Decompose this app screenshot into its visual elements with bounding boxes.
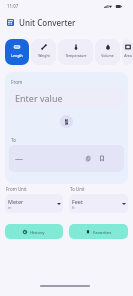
staticText: To Unit — [70, 186, 85, 192]
staticText: Area — [124, 53, 132, 58]
button[interactable]: Area — [122, 39, 133, 65]
button[interactable]: Bookmark — [100, 156, 104, 161]
staticText: Enter value — [15, 92, 63, 104]
staticText: Length — [11, 53, 23, 58]
button[interactable]: Favorites — [69, 224, 128, 239]
button[interactable]: Volume — [95, 39, 120, 65]
staticText: Volume — [101, 53, 114, 58]
button[interactable]: Temperature — [58, 39, 93, 65]
staticText: 11:07 — [7, 3, 19, 9]
button[interactable]: Swap units — [60, 115, 73, 128]
button[interactable]: History — [5, 224, 63, 239]
staticText: m — [8, 205, 12, 210]
button[interactable]: Enter value — [9, 88, 124, 108]
button[interactable]: Meter — [5, 194, 63, 213]
staticText: History — [30, 229, 45, 235]
staticText: Feet — [72, 198, 83, 205]
staticText: From — [11, 79, 23, 85]
staticText: From Unit — [6, 186, 27, 192]
staticText: Weight — [38, 53, 50, 58]
staticText: Unit Converter — [19, 17, 76, 28]
staticText: To — [11, 137, 17, 143]
button[interactable]: Copy — [86, 156, 90, 161]
staticText: — — [15, 153, 23, 164]
button[interactable]: Length — [5, 39, 29, 65]
staticText: Temperature — [65, 53, 87, 58]
staticText: Favorites — [93, 229, 112, 235]
button[interactable]: Weight — [31, 39, 56, 65]
button[interactable]: Feet — [69, 194, 128, 213]
staticText: Meter — [8, 198, 24, 205]
staticText: ft — [72, 205, 75, 210]
